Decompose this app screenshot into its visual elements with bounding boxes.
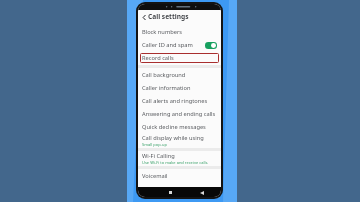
- staticText: Wi-Fi Calling: [142, 152, 175, 160]
- staticText: Call alerts and ringtones: [142, 97, 208, 105]
- button[interactable]: Navigate up: [140, 13, 148, 21]
- staticText: Quick decline messages: [142, 123, 206, 131]
- button[interactable]: Call display while using apps: [138, 133, 221, 148]
- button[interactable]: Call alerts and ringtones: [138, 94, 221, 107]
- button[interactable]: Caller ID and spam protection, on: [205, 42, 217, 49]
- button[interactable]: Back: [197, 188, 206, 197]
- staticText: Call background: [142, 71, 186, 79]
- button[interactable]: Voicemail: [138, 169, 221, 182]
- button[interactable]: Wi-Fi Calling: [138, 151, 221, 166]
- staticText: Use Wi-Fi to make and receive calls.: [142, 160, 209, 165]
- button[interactable]: Record calls: [138, 51, 221, 65]
- staticText: Answering and ending calls: [142, 110, 216, 118]
- button[interactable]: Call background: [138, 68, 221, 81]
- staticText: Call settings: [148, 12, 189, 21]
- staticText: Call display while using apps: [142, 134, 217, 142]
- button[interactable]: Block numbers: [138, 25, 221, 38]
- button[interactable]: Caller ID and spam protection: [138, 38, 221, 51]
- button[interactable]: Answering and ending calls: [138, 107, 221, 120]
- staticText: Caller information: [142, 84, 191, 92]
- staticText: Small pop-up: [142, 142, 167, 147]
- staticText: Voicemail: [142, 172, 168, 180]
- staticText: Block numbers: [142, 28, 182, 36]
- staticText: Caller ID and spam protection: [142, 41, 205, 49]
- button[interactable]: Recent apps: [166, 188, 175, 197]
- button[interactable]: Quick decline messages: [138, 120, 221, 133]
- staticText: Record calls: [142, 54, 174, 62]
- button[interactable]: Caller information: [138, 81, 221, 94]
